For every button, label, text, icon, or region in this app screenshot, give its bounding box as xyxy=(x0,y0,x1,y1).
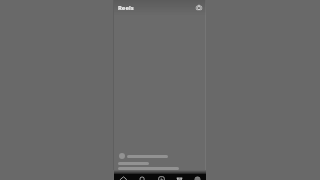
staticText: Reels xyxy=(118,4,134,12)
button[interactable]: Profile xyxy=(188,174,206,180)
button[interactable]: Reels xyxy=(152,174,170,180)
button[interactable]: Camera xyxy=(194,3,203,12)
button[interactable]: Shop xyxy=(170,174,188,180)
button[interactable]: Search xyxy=(133,174,152,180)
button[interactable]: Home xyxy=(114,174,133,180)
